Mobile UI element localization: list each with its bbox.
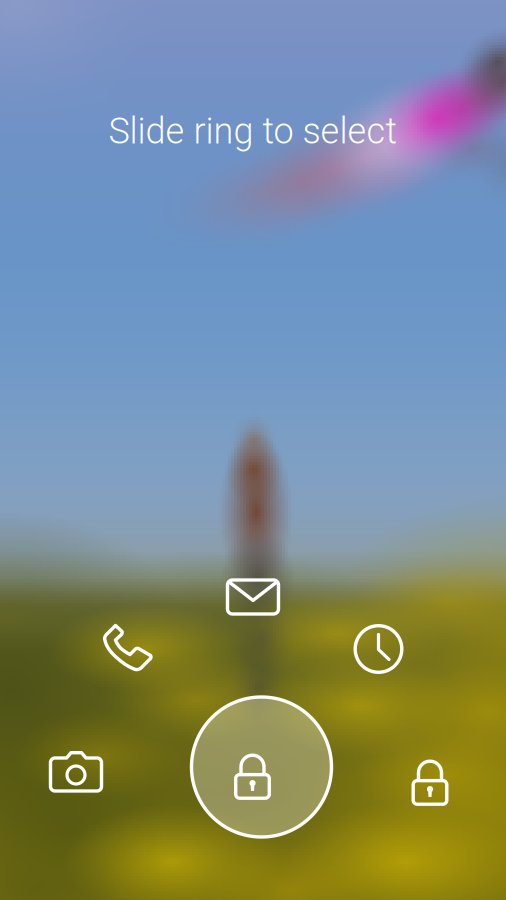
button[interactable]: Phone (92, 613, 162, 683)
button[interactable]: Clock (343, 614, 413, 684)
button[interactable]: Messages (218, 565, 288, 629)
button[interactable]: Camera (41, 739, 111, 803)
staticText: Slide ring to select (108, 110, 397, 152)
button[interactable]: Lock (395, 738, 465, 808)
button[interactable]: Unlock (189, 695, 333, 839)
